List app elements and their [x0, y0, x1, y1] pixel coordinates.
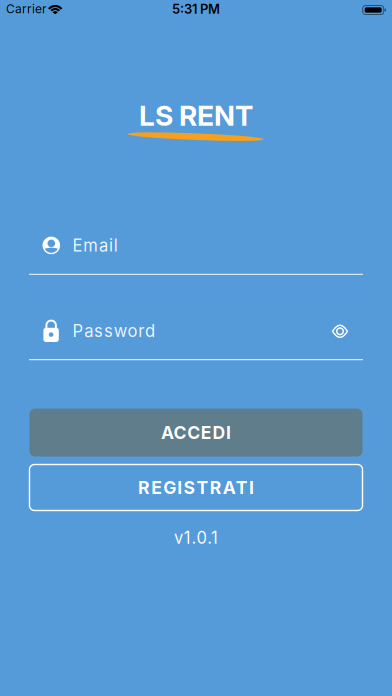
- staticText: LS RENT: [139, 99, 253, 132]
- staticText: v1.0.1: [174, 528, 218, 548]
- staticText: REGISTRATI: [138, 477, 254, 498]
- button[interactable]: Password: [29, 310, 363, 352]
- staticText: Password: [72, 321, 155, 341]
- staticText: Carrier: [6, 2, 47, 16]
- button[interactable]: REGISTRATI: [29, 464, 362, 510]
- button[interactable]: ACCEDI: [29, 408, 362, 456]
- staticText: Email: [72, 235, 118, 255]
- button[interactable]: Show password: [325, 316, 355, 346]
- button[interactable]: Email: [29, 224, 363, 266]
- staticText: ACCEDI: [161, 422, 231, 443]
- staticText: 5:31 PM: [172, 1, 220, 17]
